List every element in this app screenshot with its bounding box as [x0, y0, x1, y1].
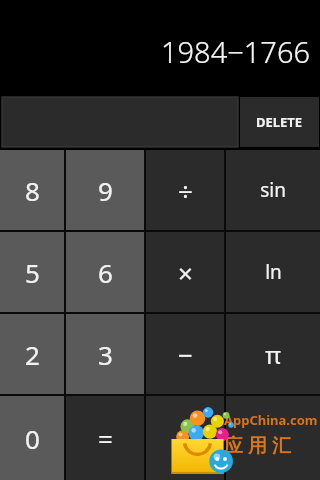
- button[interactable]: DELETE: [240, 97, 319, 147]
- button[interactable]: ×: [146, 232, 224, 312]
- button[interactable]: 5: [0, 232, 64, 312]
- button[interactable]: 0: [0, 396, 64, 480]
- button[interactable]: 8: [0, 150, 64, 230]
- staticText: ÷: [178, 173, 193, 208]
- staticText: 6: [98, 255, 113, 290]
- staticText: AppChina.com: [224, 411, 318, 429]
- staticText: 5: [25, 255, 40, 290]
- button[interactable]: 9: [66, 150, 144, 230]
- staticText: 2: [25, 337, 40, 372]
- button[interactable]: 3: [66, 314, 144, 394]
- staticText: =: [98, 421, 113, 456]
- staticText: 应 用 汇: [224, 432, 291, 458]
- button[interactable]: =: [66, 396, 144, 480]
- staticText: DELETE: [256, 113, 303, 131]
- staticText: 9: [98, 173, 113, 208]
- button[interactable]: 2: [0, 314, 64, 394]
- button[interactable]: π: [226, 314, 320, 394]
- staticText: π: [265, 338, 281, 371]
- staticText: −: [178, 337, 193, 372]
- button[interactable]: sin: [226, 150, 320, 230]
- button[interactable]: ÷: [146, 150, 224, 230]
- staticText: ×: [178, 255, 193, 290]
- button[interactable]: ln: [226, 232, 320, 312]
- staticText: 1984−1766: [160, 32, 310, 71]
- staticText: sin: [260, 177, 286, 203]
- button[interactable]: [146, 396, 224, 480]
- button[interactable]: [226, 396, 320, 480]
- staticText: 8: [25, 173, 40, 208]
- staticText: 0: [25, 421, 40, 456]
- staticText: 3: [98, 337, 113, 372]
- staticText: ln: [265, 259, 282, 285]
- button[interactable]: −: [146, 314, 224, 394]
- button[interactable]: 6: [66, 232, 144, 312]
